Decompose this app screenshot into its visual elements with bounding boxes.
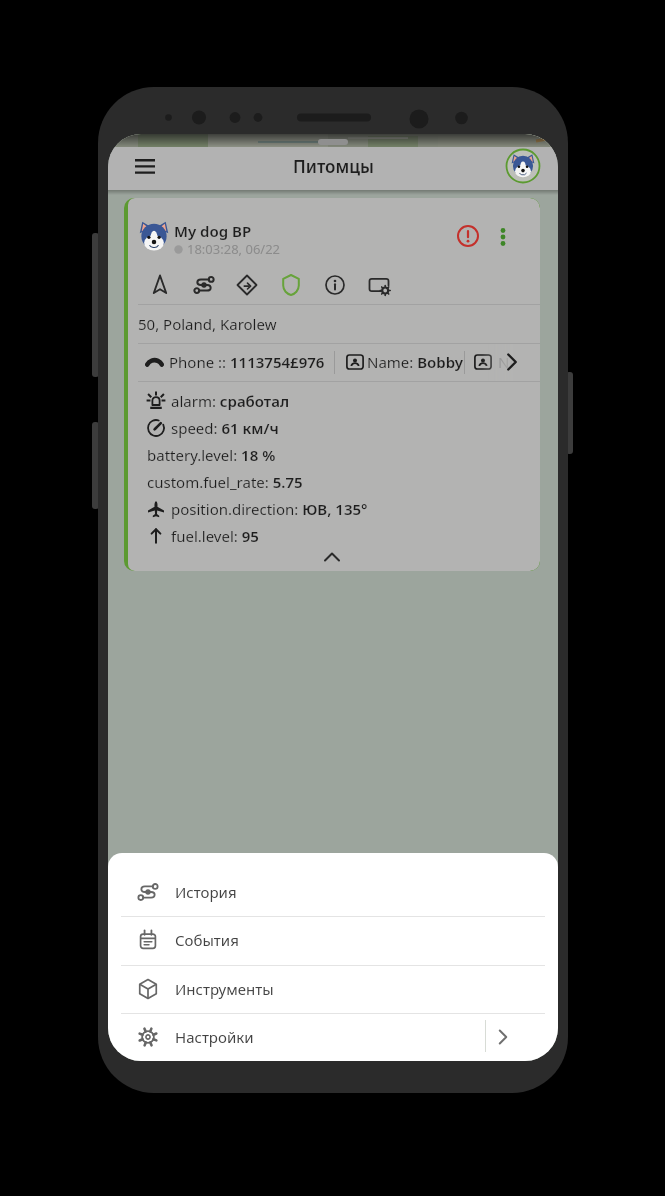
staticText: 50, Poland, Karolew [138,314,277,334]
staticText: Ne [498,352,518,372]
button[interactable] [486,1013,558,1061]
staticText: battery.level: 18 % [147,445,276,465]
staticText: Настройки [175,1027,254,1047]
button[interactable] [236,274,258,296]
button[interactable] [457,225,479,247]
staticText: My dog BP [174,221,252,241]
staticText: Phone :: 1113754£976 [169,352,325,372]
staticText: alarm: сработал [171,391,290,411]
button[interactable]: Phone :: 1113754£976 [124,344,540,381]
button[interactable]: Настройки [108,1013,558,1061]
button[interactable]: Инструменты [108,965,558,1013]
staticText: 18:03:28, 06/22 [187,240,281,258]
staticText: position.direction: ЮВ, 135° [171,499,368,519]
button[interactable] [280,274,302,296]
button[interactable] [506,149,540,183]
button[interactable] [125,148,165,186]
button[interactable] [324,274,346,296]
button[interactable]: My dog BP [124,198,540,571]
button[interactable] [149,274,171,296]
staticText: Name: Bobby [367,352,464,372]
staticText: Питомцы [293,155,374,178]
button[interactable] [368,274,390,296]
staticText: fuel.level: 95 [171,526,259,546]
staticText: История [175,882,237,902]
staticText: custom.fuel_rate: 5.75 [147,472,303,492]
button[interactable] [494,225,512,249]
button[interactable]: События [108,916,558,964]
button[interactable] [193,274,215,296]
staticText: События [175,930,239,950]
button[interactable] [310,546,354,568]
button[interactable]: История [108,868,558,916]
staticText: speed: 61 км/ч [171,418,279,438]
staticText: Инструменты [175,979,274,999]
